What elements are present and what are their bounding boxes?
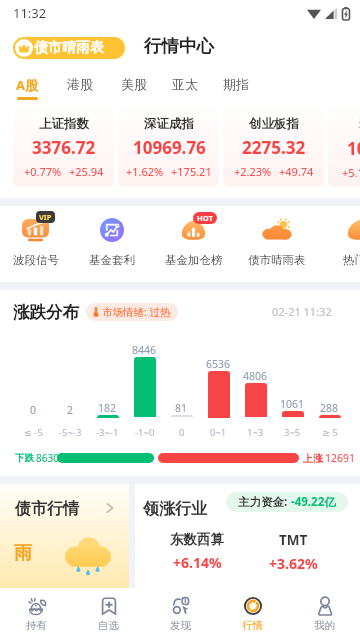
button[interactable]: 自选 [72,588,144,639]
staticText: VIP [39,212,52,222]
button[interactable]: 期指 [215,72,257,106]
staticText: 下跌 [15,452,34,464]
button[interactable]: TMT [269,531,318,573]
staticText: 行情 [242,619,263,632]
staticText: 0 [179,426,185,439]
button[interactable]: 创业板指 [223,107,324,187]
staticText: 288 [320,401,339,415]
staticText: +6.14% [173,553,222,572]
button[interactable]: 债市晴雨表 [237,206,317,282]
button[interactable]: 领涨行业 [135,484,360,588]
staticText: 东数西算 [170,531,224,548]
staticText: 债市晴雨表 [248,253,306,267]
other: 持有 [27,596,47,616]
button[interactable]: 行情 [216,588,288,639]
staticText: 基金套利 [89,253,135,267]
staticText: 3376.72 [32,136,96,159]
button[interactable]: 东数西算 [170,531,224,572]
staticText: 港股 [67,76,93,92]
button[interactable]: VIP [0,206,76,282]
staticText: 1022.88 [347,137,360,160]
staticText: ≥ 5 [322,426,338,439]
staticText: 涨跌分布 [13,302,79,323]
button[interactable]: A股 [8,72,46,106]
staticText: 8630 [36,451,59,465]
staticText: -1~0 [135,426,155,439]
staticText: TMT [279,531,308,549]
staticText: 波段信号 [13,253,59,267]
staticText: 4806 [243,369,268,383]
staticText: 美股 [121,76,147,92]
staticText: 10969.76 [133,136,206,159]
staticText: 1061 [280,397,305,411]
staticText: 雨 [14,542,32,565]
button[interactable]: HOT [154,206,234,282]
staticText: A股 [16,76,38,94]
staticText: 上证指数 [39,116,89,132]
staticText: +3.62% [269,554,318,573]
staticText: 发现 [170,619,191,632]
staticText: 2 [67,403,74,417]
staticText: +25.94 [69,164,104,179]
staticText: 债市行情 [15,499,79,519]
staticText: +175.21 [171,164,212,179]
staticText: 02-21 11:32 [272,304,332,319]
button[interactable]: 科创50 [328,107,360,187]
staticText: 亚太 [172,76,198,92]
button[interactable]: 发现 [144,588,216,639]
button[interactable]: 债市行情 [0,484,129,588]
staticText: ≤ -5 [24,426,43,439]
staticText: 科创50 [359,116,360,133]
other: 发现 [173,597,189,614]
staticText: 6536 [206,357,231,371]
staticText: 我的 [314,619,335,632]
staticText: 2275.32 [242,136,306,159]
staticText: 自选 [98,619,119,632]
staticText: 8446 [132,343,157,357]
staticText: 上涨 [303,452,323,465]
staticText: +0.77% [24,164,62,179]
staticText: -49.22亿 [291,494,336,510]
button[interactable]: 热门榜 [320,206,360,282]
staticText: 0~1 [210,426,227,439]
button[interactable]: 我的 [288,588,360,639]
staticText: 期指 [223,76,249,92]
staticText: 12691 [325,451,356,465]
staticText: 11:32 [13,4,47,22]
staticText: 持有 [26,619,47,632]
other: 行情 [244,597,262,615]
other: 自选 [101,597,117,615]
staticText: 债市晴雨表 [34,39,104,57]
staticText: 领涨行业 [143,499,207,519]
button[interactable]: 持有 [0,588,72,639]
staticText: +49.74 [279,164,314,179]
button[interactable]: 债市晴雨表 [13,37,125,59]
button[interactable]: 基金套利 [72,206,152,282]
staticText: +2.23% [234,164,272,179]
staticText: 创业板指 [249,116,299,132]
staticText: 市场情绪: 过热 [102,305,171,319]
button[interactable]: 上证指数 [13,107,114,187]
staticText: 行情中心 [144,35,214,57]
staticText: 3~5 [284,426,301,439]
button[interactable]: 港股 [59,72,101,106]
other: 我的 [318,597,332,615]
button[interactable]: 美股 [113,72,155,106]
staticText: 主力资金: [238,494,291,510]
staticText: +5.12% [342,165,360,180]
staticText: 1~3 [247,426,264,439]
staticText: 深证成指 [144,116,194,132]
staticText: -3~-1 [96,426,119,439]
staticText: 81 [175,401,188,415]
button[interactable]: 亚太 [164,72,206,106]
staticText: 0 [30,403,37,417]
button[interactable]: 深证成指 [118,107,219,187]
staticText: HOT [197,213,213,223]
staticText: 基金加仓榜 [165,253,223,267]
staticText: -5~-3 [59,426,82,439]
staticText: 热门榜 [343,253,360,267]
staticText: 182 [98,401,117,415]
staticText: +1.62% [126,164,164,179]
